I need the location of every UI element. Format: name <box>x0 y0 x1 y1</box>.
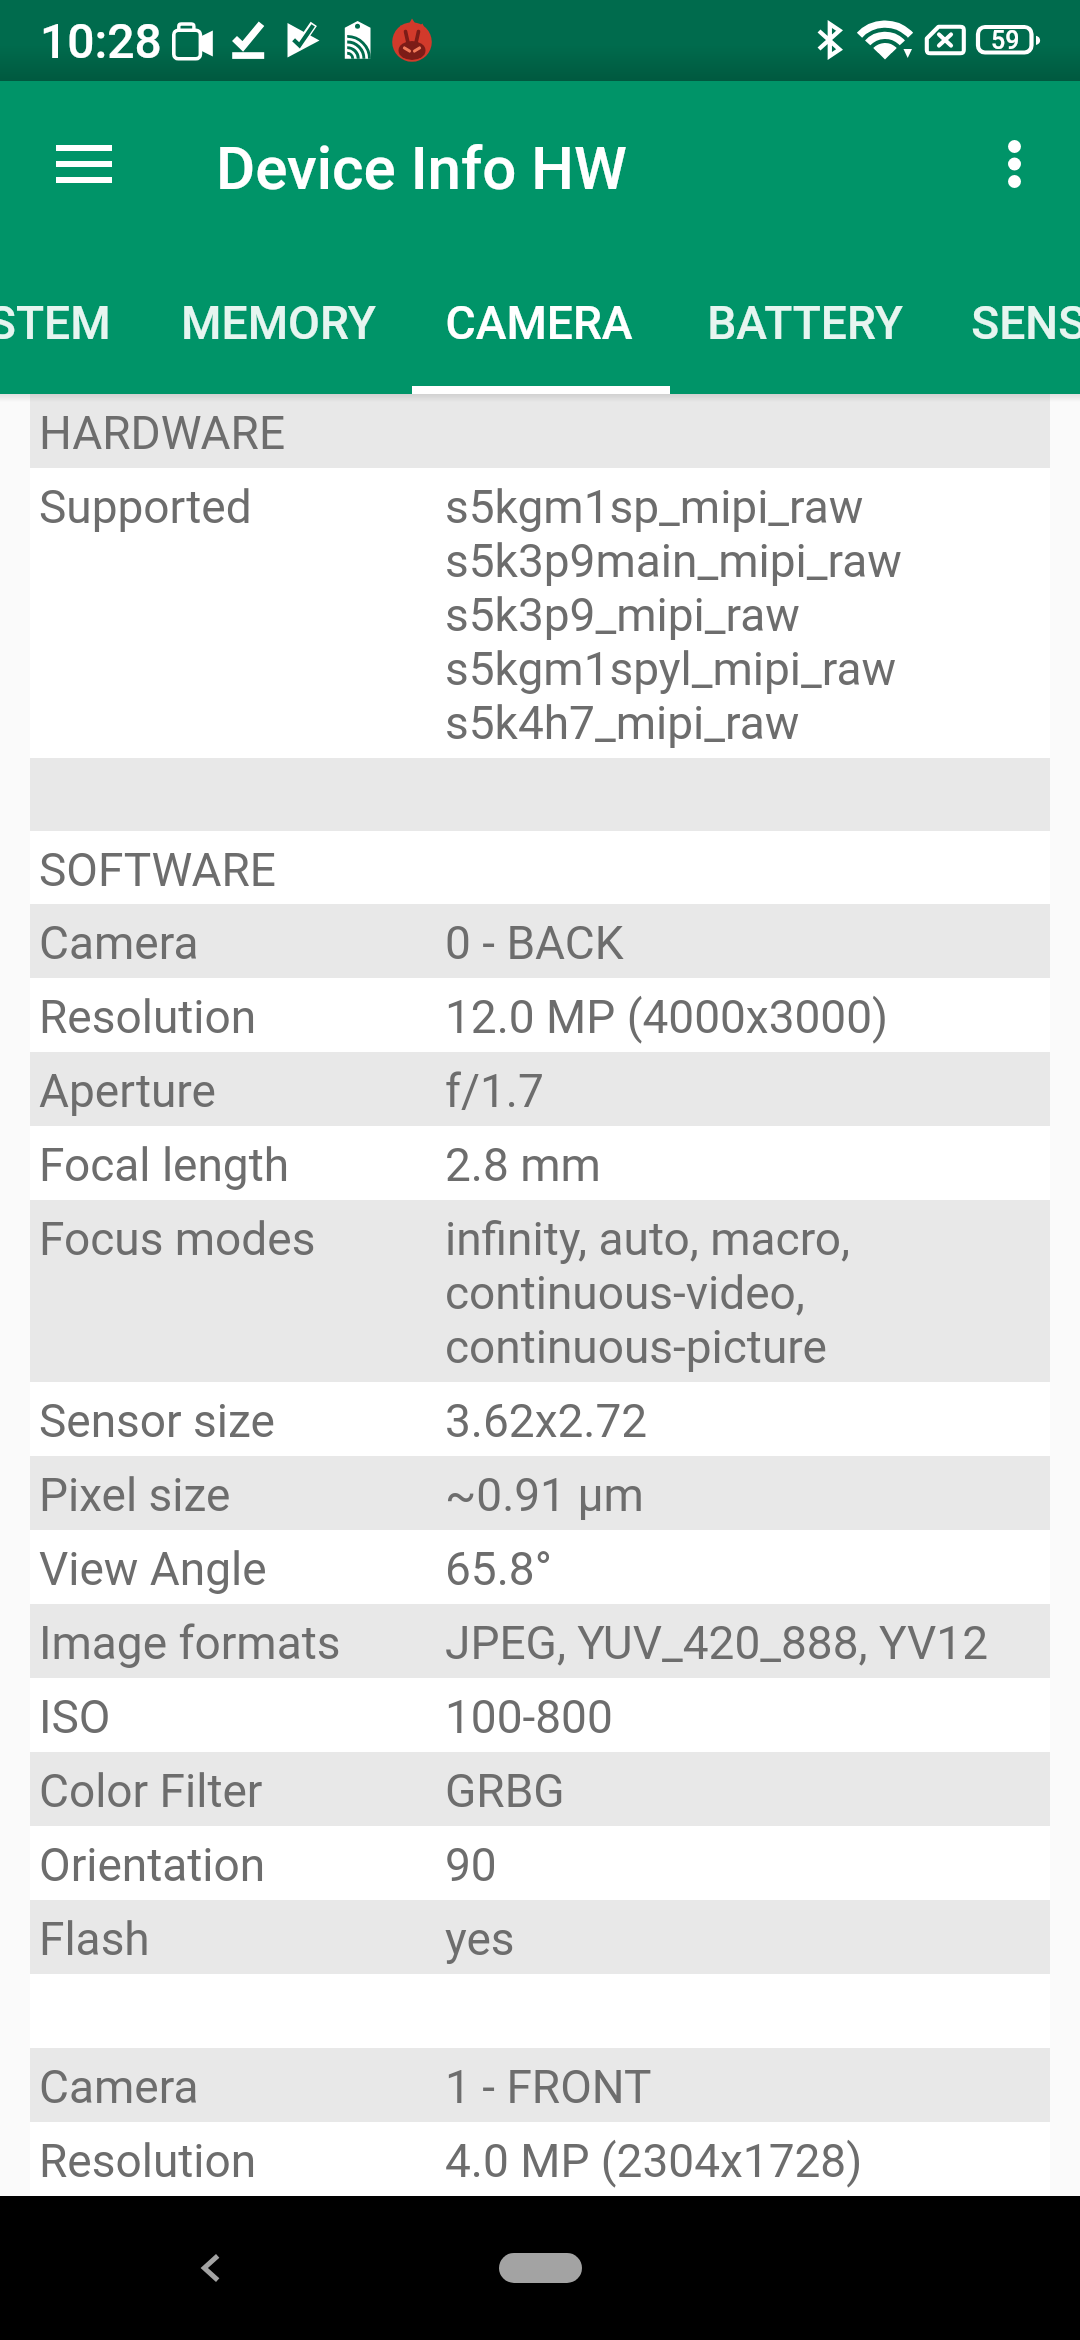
staticText: Camera <box>39 916 199 970</box>
button[interactable]: Orientation <box>30 1826 1050 1900</box>
button[interactable]: Resolution <box>30 2122 1050 2196</box>
staticText: ISO <box>39 1690 111 1744</box>
staticText: HARDWARE <box>39 406 286 460</box>
button[interactable]: Aperture <box>30 1052 1050 1126</box>
staticText: Device Info HW <box>216 133 627 203</box>
staticText: yes <box>445 1912 515 1966</box>
staticText: infinity, auto, macro, continuous-video,… <box>445 1212 851 1374</box>
button[interactable]: Focus modes <box>30 1200 1050 1382</box>
staticText: BATTERY <box>707 296 903 350</box>
staticText: 4.0 MP (2304x1728) <box>445 2134 863 2188</box>
staticText: Sensor size <box>39 1394 275 1448</box>
staticText: 65.8° <box>445 1542 552 1596</box>
staticText: Orientation <box>39 1838 266 1892</box>
button[interactable]: MEMORY <box>150 278 412 394</box>
button[interactable]: Focal length <box>30 1126 1050 1200</box>
button[interactable]: Sensor size <box>30 1382 1050 1456</box>
staticText: Image formats <box>39 1616 341 1670</box>
staticText: 90 <box>445 1838 497 1892</box>
button[interactable]: Resolution <box>30 978 1050 1052</box>
staticText: 3.62x2.72 <box>445 1394 648 1448</box>
button[interactable]: SYSTEM <box>0 278 150 394</box>
staticText: s5kgm1sp_mipi_raw s5k3p9main_mipi_raw s5… <box>445 480 902 750</box>
staticText: Resolution <box>39 990 257 1044</box>
staticText: 2.8 mm <box>445 1138 601 1192</box>
button[interactable]: Color Filter <box>30 1752 1050 1826</box>
button[interactable]: Pixel size <box>30 1456 1050 1530</box>
staticText: MEMORY <box>181 296 376 350</box>
staticText: 0 - BACK <box>445 916 624 970</box>
button[interactable]: Flash <box>30 1900 1050 1974</box>
staticText: 10:28 <box>40 13 162 69</box>
staticText: 59 <box>991 26 1020 55</box>
staticText: SYSTEM <box>0 296 111 350</box>
staticText: 12.0 MP (4000x3000) <box>445 990 889 1044</box>
button[interactable]: BATTERY <box>670 278 935 394</box>
staticText: Flash <box>39 1912 150 1966</box>
staticText: ~0.91 µm <box>445 1468 644 1522</box>
staticText: GRBG <box>445 1764 565 1818</box>
button[interactable]: CAMERA <box>412 278 670 394</box>
button[interactable]: More options <box>958 108 1070 220</box>
button[interactable]: ISO <box>30 1678 1050 1752</box>
staticText: SOFTWARE <box>39 843 276 897</box>
staticText: CAMERA <box>445 296 633 350</box>
staticText: Camera <box>39 2060 199 2114</box>
staticText: Resolution <box>39 2134 257 2188</box>
staticText: 100-800 <box>445 1690 613 1744</box>
staticText: Focus modes <box>39 1212 316 1266</box>
staticText: Focal length <box>39 1138 290 1192</box>
staticText: 1 - FRONT <box>445 2060 652 2114</box>
button[interactable]: Camera <box>30 2048 1050 2122</box>
staticText: JPEG, YUV_420_888, YV12 <box>445 1616 989 1670</box>
button[interactable]: Back <box>157 2214 265 2322</box>
button[interactable]: SENSORS <box>935 278 1080 394</box>
button[interactable]: Supported <box>30 468 1050 758</box>
staticText: Color Filter <box>39 1764 263 1818</box>
staticText: Pixel size <box>39 1468 231 1522</box>
staticText: SENSORS <box>971 296 1080 350</box>
button[interactable]: Open navigation drawer <box>28 108 140 220</box>
button[interactable]: Camera <box>30 904 1050 978</box>
button[interactable]: View Angle <box>30 1530 1050 1604</box>
staticText: Supported <box>39 480 252 534</box>
button[interactable]: Home <box>499 2253 582 2283</box>
staticText: f/1.7 <box>445 1064 544 1118</box>
staticText: Aperture <box>39 1064 216 1118</box>
button[interactable]: Image formats <box>30 1604 1050 1678</box>
staticText: View Angle <box>39 1542 267 1596</box>
